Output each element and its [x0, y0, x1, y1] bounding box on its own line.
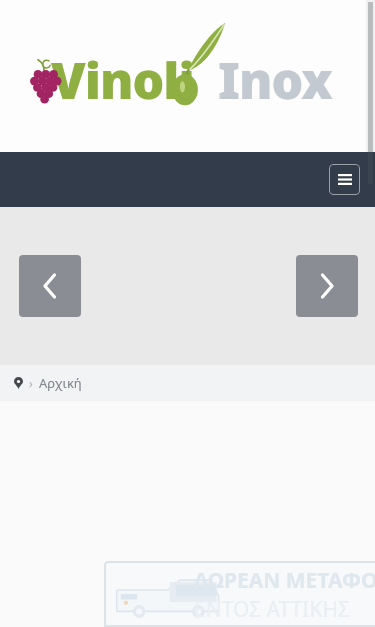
staticText: Αρχική: [39, 374, 82, 392]
staticText: Inox: [194, 46, 332, 114]
button[interactable]: Menu: [329, 164, 360, 195]
button[interactable]: ›: [14, 374, 82, 392]
staticText: Vinoli: [51, 46, 194, 114]
staticText: ›: [29, 375, 33, 391]
button[interactable]: ΔΩΡΕΑΝ ΜΕΤΑΦΟ: [104, 561, 375, 627]
staticText: ΔΩΡΕΑΝ ΜΕΤΑΦΟ: [194, 566, 375, 595]
button[interactable]: Vinolio Inox home: [23, 24, 353, 124]
button[interactable]: Previous slide: [19, 255, 81, 317]
staticText: ΕΝΤΟΣ ΑΤΤΙΚΗΣ: [194, 595, 350, 624]
button[interactable]: Next slide: [296, 255, 358, 317]
